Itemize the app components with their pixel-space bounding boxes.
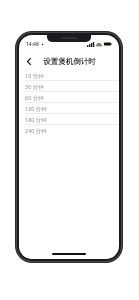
staticText: 240 分钟 — [25, 127, 47, 135]
staticText: 设置煲机倒计时 — [43, 57, 96, 66]
button[interactable]: 120 分钟 — [19, 103, 119, 114]
staticText: 14:48 — [26, 41, 39, 48]
staticText: 60 分钟 — [25, 94, 44, 102]
button[interactable]: 10 分钟 — [19, 70, 119, 81]
button[interactable]: Back — [23, 56, 34, 67]
staticText: 30 分钟 — [25, 83, 44, 91]
staticText: 180 分钟 — [25, 116, 47, 124]
button[interactable]: 60 分钟 — [19, 92, 119, 103]
button[interactable]: 180 分钟 — [19, 114, 119, 125]
button[interactable]: 30 分钟 — [19, 81, 119, 92]
staticText: 10 分钟 — [25, 72, 44, 80]
staticText: 120 分钟 — [25, 105, 47, 113]
button[interactable]: 240 分钟 — [19, 125, 119, 136]
